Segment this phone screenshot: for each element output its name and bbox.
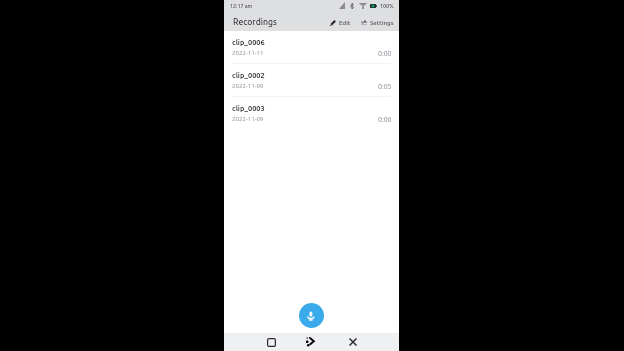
- staticText: clip_0006: [232, 38, 265, 46]
- staticText: 2022-11-11: [232, 49, 264, 56]
- staticText: 0:06: [378, 115, 392, 123]
- staticText: 0:05: [378, 82, 392, 90]
- staticText: 2022-11-09: [232, 115, 264, 122]
- button[interactable]: clip_0003: [224, 97, 399, 129]
- button[interactable]: Edit: [329, 19, 352, 26]
- staticText: Recordings: [233, 17, 277, 27]
- staticText: clip_0003: [232, 104, 265, 112]
- staticText: 2022-11-09: [232, 82, 264, 89]
- button[interactable]: clip_0002: [224, 64, 399, 96]
- staticText: 100%: [380, 3, 394, 9]
- staticText: 0:00: [378, 49, 392, 57]
- button[interactable]: Close: [344, 333, 362, 351]
- staticText: 12:17 am: [230, 3, 253, 9]
- button[interactable]: Home: [262, 333, 280, 351]
- staticText: clip_0002: [232, 71, 265, 79]
- staticText: Edit: [339, 19, 351, 26]
- button[interactable]: clip_0006: [224, 31, 399, 63]
- button[interactable]: Record: [299, 303, 324, 328]
- button[interactable]: Apps: [300, 333, 318, 351]
- button[interactable]: Settings: [360, 19, 395, 26]
- staticText: Settings: [370, 19, 394, 26]
